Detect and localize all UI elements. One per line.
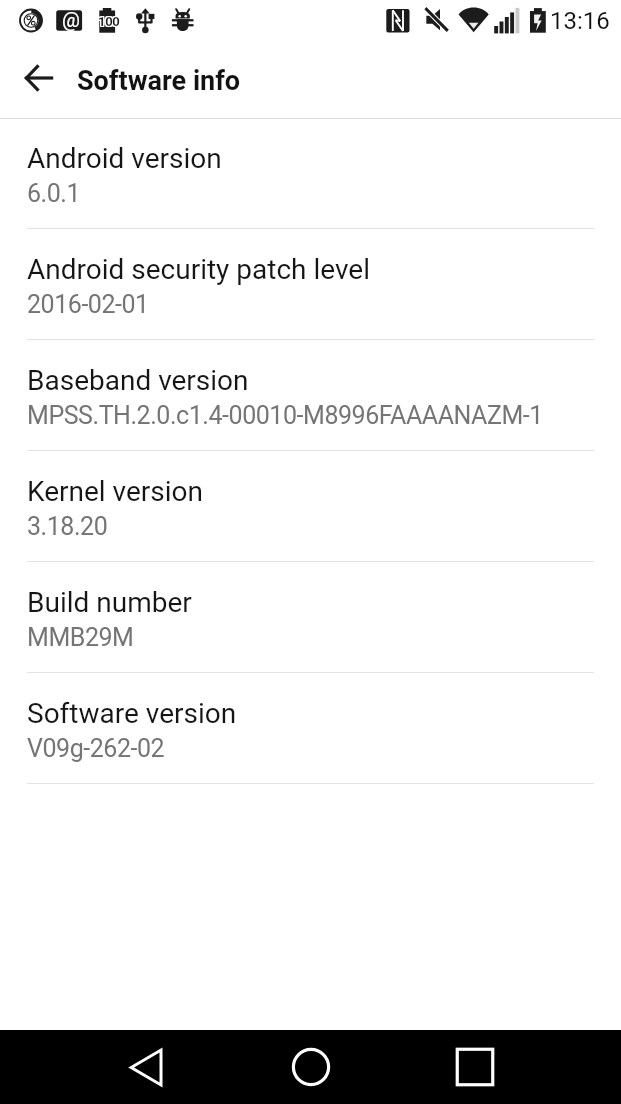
staticText: Software info [77, 65, 241, 97]
staticText: @ [62, 8, 80, 31]
staticText: Software version [27, 697, 237, 730]
staticText: V09g-262-02 [27, 734, 165, 763]
button[interactable]: Android security patch level [0, 230, 621, 341]
staticText: 100 [97, 15, 119, 30]
staticText: 100 [97, 14, 119, 29]
staticText: Android version [27, 142, 222, 175]
button[interactable]: Build number [0, 563, 621, 674]
staticText: 100 [97, 13, 119, 28]
button[interactable]: Software version [0, 674, 621, 785]
staticText: 100 [98, 14, 120, 29]
button[interactable]: Back [14, 53, 64, 103]
staticText: 100 [99, 14, 121, 29]
staticText: 100 [98, 15, 120, 30]
button[interactable]: Home [281, 1037, 341, 1097]
staticText: Build number [27, 586, 192, 619]
staticText: 6.0.1 [27, 179, 81, 208]
staticText: MPSS.TH.2.0.c1.4-00010-M8996FAAAANAZM-1 [27, 401, 543, 430]
staticText: 3.18.20 [27, 512, 108, 541]
staticText: 100 [99, 15, 121, 30]
staticText: MMB29M [27, 623, 134, 652]
staticText: 2016-02-01 [27, 290, 149, 319]
button[interactable]: Back [116, 1037, 176, 1097]
staticText: 100 [99, 13, 121, 28]
staticText: Android security patch level [27, 253, 370, 286]
staticText: Kernel version [27, 475, 204, 508]
staticText: 13:16 [550, 7, 610, 35]
button[interactable]: Kernel version [0, 452, 621, 563]
button[interactable]: Recents [445, 1037, 505, 1097]
staticText: Baseband version [27, 364, 249, 397]
button[interactable]: Baseband version [0, 341, 621, 452]
staticText: 100 [98, 13, 120, 28]
button[interactable]: Android version [0, 119, 621, 230]
